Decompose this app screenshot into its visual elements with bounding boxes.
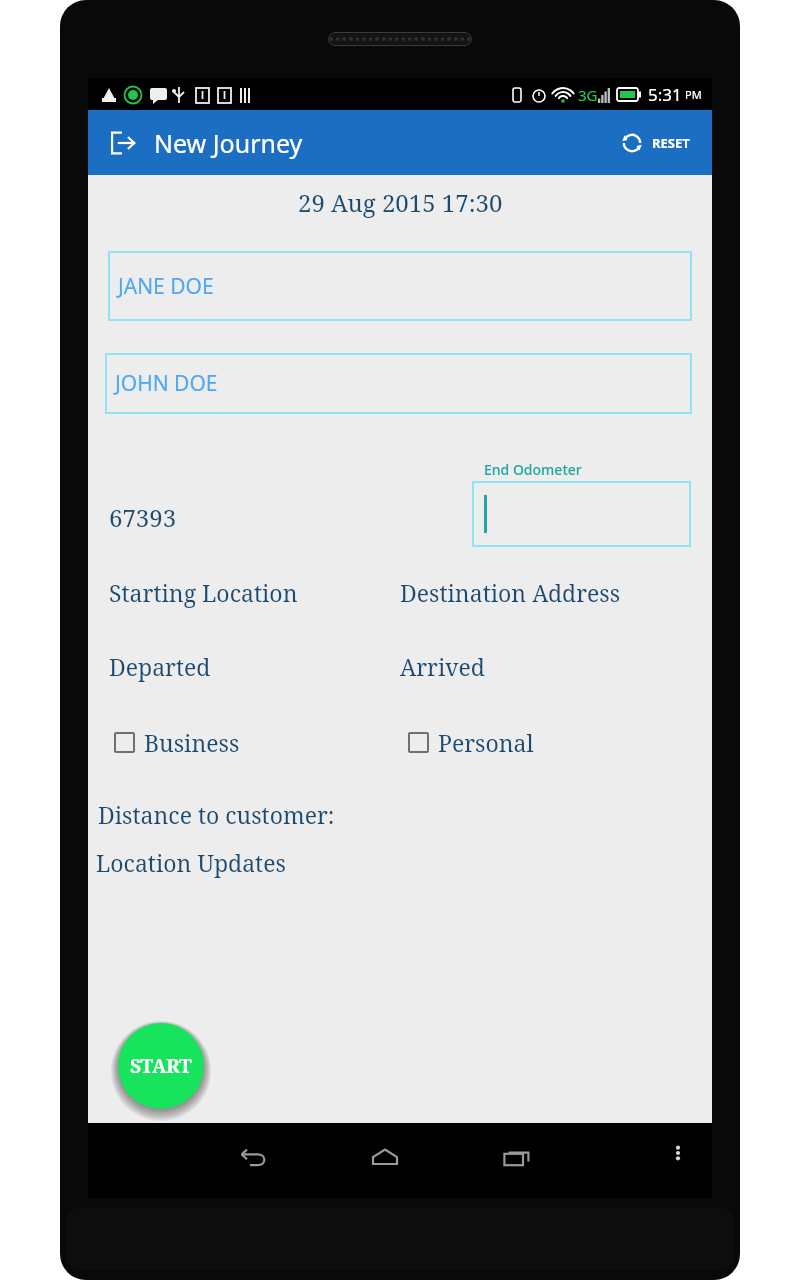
staticText: Personal <box>438 727 534 758</box>
button[interactable]: Personal <box>408 727 534 758</box>
button[interactable]: JANE DOE <box>108 251 692 321</box>
staticText: End Odometer <box>484 460 582 479</box>
staticText: START <box>130 1053 192 1079</box>
staticText: 3G <box>578 85 598 105</box>
button[interactable] <box>472 481 691 547</box>
button[interactable]: Exit <box>106 126 140 160</box>
staticText: 67393 <box>109 501 177 534</box>
staticText: Location Updates <box>96 847 286 878</box>
button[interactable]: Recent apps <box>482 1123 552 1193</box>
staticText: New Journey <box>154 126 303 160</box>
button[interactable]: Business <box>114 727 240 758</box>
button[interactable]: More options <box>648 1123 708 1183</box>
staticText: PM <box>685 87 702 102</box>
button[interactable]: RESET <box>614 125 694 161</box>
staticText: 5:31 <box>648 83 682 106</box>
staticText: Arrived <box>400 651 485 682</box>
button[interactable]: START <box>118 1023 204 1109</box>
staticText: Departed <box>109 651 211 682</box>
staticText: Distance to customer: <box>98 799 335 830</box>
staticText: JOHN DOE <box>115 369 218 398</box>
button[interactable]: Home <box>350 1123 420 1193</box>
staticText: RESET <box>652 134 690 152</box>
button[interactable]: JOHN DOE <box>105 353 692 414</box>
staticText: JANE DOE <box>118 272 214 301</box>
staticText: Business <box>144 727 240 758</box>
staticText: Starting Location <box>109 577 298 608</box>
button[interactable]: Back <box>218 1123 288 1193</box>
staticText: Destination Address <box>400 577 621 608</box>
staticText: 29 Aug 2015 17:30 <box>298 186 503 219</box>
